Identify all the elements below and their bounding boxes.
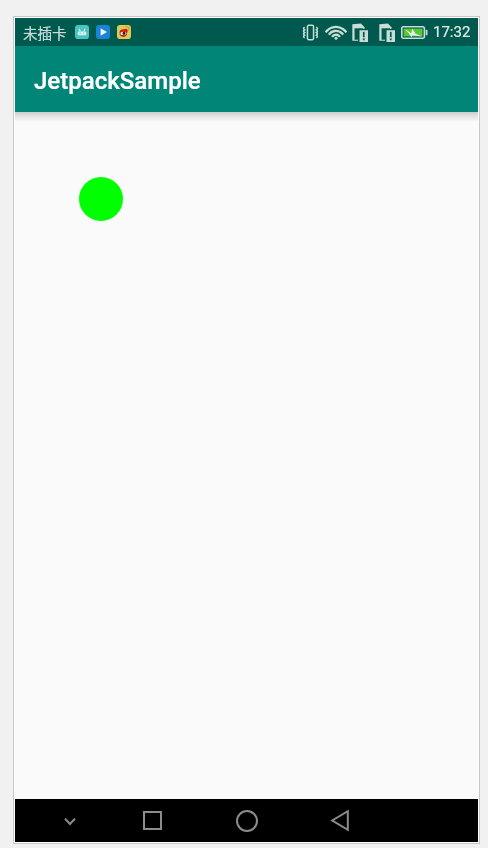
staticText: 未插卡 bbox=[23, 22, 67, 43]
staticText: 17:32 bbox=[433, 23, 471, 41]
button[interactable]: Back bbox=[319, 799, 361, 842]
button[interactable]: Green circle bbox=[79, 177, 123, 221]
button[interactable]: Hide keyboard bbox=[49, 799, 91, 842]
staticText: JetpackSample bbox=[34, 67, 201, 95]
button[interactable]: Home bbox=[226, 799, 268, 842]
button[interactable]: Recent apps bbox=[131, 799, 173, 842]
